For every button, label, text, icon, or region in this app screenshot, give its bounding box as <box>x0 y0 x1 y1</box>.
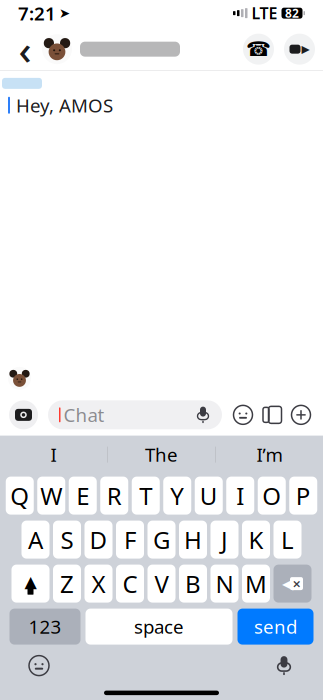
staticText: Y <box>170 480 184 512</box>
staticText: L <box>281 524 294 556</box>
button[interactable]: Stickers <box>259 401 285 429</box>
button[interactable]: Delete <box>273 565 311 603</box>
staticText: E <box>76 480 89 512</box>
staticText: ▲ <box>24 572 36 591</box>
button[interactable]: Call <box>243 34 274 65</box>
staticText: Z <box>60 568 74 600</box>
staticText: T <box>139 480 152 512</box>
staticText: U <box>200 480 218 512</box>
staticText: ➤ <box>59 6 70 21</box>
button[interactable]: E <box>69 477 97 515</box>
staticText: S <box>60 524 73 556</box>
staticText: 7:21 <box>18 1 56 26</box>
staticText: R <box>107 480 122 512</box>
button[interactable]: Voice message <box>191 402 215 428</box>
button[interactable]: H <box>179 521 207 559</box>
button[interactable]: Z <box>53 565 81 603</box>
button[interactable]: Emoji <box>230 401 256 429</box>
staticText: G <box>153 524 170 556</box>
staticText: ‹ <box>18 23 31 76</box>
button[interactable]: More options <box>288 401 314 429</box>
button[interactable]: I’m <box>216 436 323 474</box>
staticText: X <box>91 568 105 600</box>
staticText: send <box>254 614 297 639</box>
button[interactable]: Emoji keyboard <box>22 649 56 683</box>
button[interactable]: D <box>84 521 112 559</box>
button[interactable]: I <box>226 477 254 515</box>
button[interactable]: W <box>37 477 65 515</box>
staticText: The <box>145 442 178 467</box>
button[interactable]: G <box>147 521 175 559</box>
button[interactable]: Dictation <box>267 649 301 683</box>
staticText: C <box>122 568 137 600</box>
button[interactable]: Shift <box>11 565 49 603</box>
button[interactable]: Video call <box>284 34 315 65</box>
staticText: Chat <box>63 402 104 427</box>
staticText: Hey, AMOS <box>16 93 113 118</box>
staticText: N <box>215 568 233 600</box>
button[interactable]: X <box>84 565 112 603</box>
staticText: O <box>262 480 281 512</box>
staticText: I <box>50 442 56 467</box>
button[interactable]: send <box>237 609 313 645</box>
button[interactable]: A <box>21 521 49 559</box>
button[interactable]: L <box>273 521 301 559</box>
button[interactable]: T <box>132 477 160 515</box>
staticText: LTE <box>251 2 277 24</box>
staticText: B <box>185 568 201 600</box>
staticText: × <box>292 574 300 593</box>
button[interactable]: F <box>116 521 144 559</box>
staticText: I <box>236 480 244 512</box>
staticText: K <box>248 524 263 556</box>
staticText: M <box>245 568 267 600</box>
staticText: 82 <box>285 5 299 21</box>
button[interactable]: M <box>242 565 270 603</box>
button[interactable]: Back <box>8 29 42 69</box>
button[interactable]: P <box>289 477 317 515</box>
staticText: V <box>154 568 168 600</box>
staticText: P <box>296 480 311 512</box>
staticText: A <box>28 524 43 556</box>
button[interactable]: U <box>195 477 223 515</box>
staticText: F <box>124 524 136 556</box>
button[interactable]: O <box>258 477 286 515</box>
button[interactable]: V <box>147 565 175 603</box>
staticText: ◀ <box>282 575 293 592</box>
staticText: Q <box>10 480 29 512</box>
button[interactable]: B <box>179 565 207 603</box>
staticText: ☎ <box>246 38 271 60</box>
button[interactable]: J <box>210 521 238 559</box>
button[interactable]: K <box>242 521 270 559</box>
staticText: ▶ <box>301 43 309 55</box>
button[interactable]: C <box>116 565 144 603</box>
staticText: W <box>40 480 62 512</box>
button[interactable]: I <box>0 436 107 474</box>
button[interactable]: Camera <box>9 400 38 429</box>
button[interactable]: 123 <box>9 609 80 645</box>
button[interactable]: N <box>210 565 238 603</box>
staticText: space <box>134 614 184 639</box>
button[interactable]: S <box>53 521 81 559</box>
staticText: I’m <box>256 442 282 467</box>
staticText: J <box>221 524 228 556</box>
button[interactable]: space <box>85 609 232 645</box>
button[interactable]: R <box>100 477 128 515</box>
staticText: H <box>184 524 202 556</box>
button[interactable]: The <box>108 436 215 474</box>
staticText: D <box>89 524 107 556</box>
staticText: 123 <box>28 614 61 639</box>
button[interactable]: Y <box>163 477 191 515</box>
button[interactable] <box>42 34 180 64</box>
button[interactable]: Q <box>6 477 34 515</box>
